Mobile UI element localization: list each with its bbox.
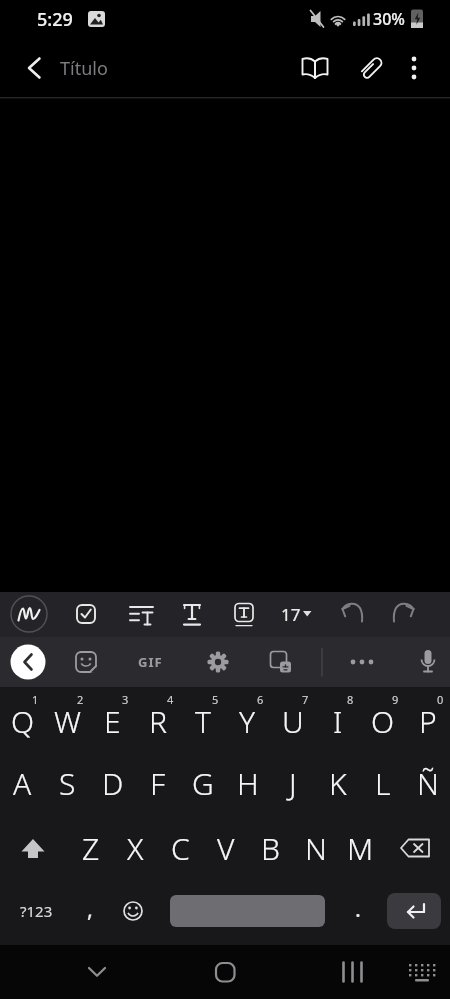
button[interactable] xyxy=(350,48,394,88)
button[interactable] xyxy=(110,886,156,936)
button[interactable] xyxy=(293,48,337,88)
button[interactable] xyxy=(201,950,249,994)
button[interactable] xyxy=(7,594,51,636)
button[interactable] xyxy=(64,594,108,636)
button[interactable] xyxy=(387,893,441,929)
button[interactable] xyxy=(10,818,60,878)
button[interactable]: K xyxy=(315,752,360,814)
staticText: 4 xyxy=(167,692,174,707)
staticText: 3 xyxy=(122,692,129,707)
button[interactable]: P xyxy=(405,691,450,751)
staticText: 5 xyxy=(212,692,219,707)
button[interactable]: R xyxy=(135,691,180,751)
staticText: Ñ xyxy=(417,763,439,804)
staticText: B xyxy=(261,828,280,869)
button[interactable] xyxy=(340,640,384,684)
button[interactable]: B xyxy=(248,817,293,879)
staticText: T xyxy=(195,701,211,742)
button[interactable]: . xyxy=(338,883,378,933)
button[interactable] xyxy=(330,594,374,636)
button[interactable]: Q xyxy=(0,691,45,751)
staticText: 8 xyxy=(347,692,354,707)
button[interactable] xyxy=(73,950,121,994)
button[interactable]: ?123 xyxy=(6,886,66,936)
staticText: X xyxy=(127,828,144,869)
button[interactable]: S xyxy=(45,752,90,814)
button[interactable]: J xyxy=(270,752,315,814)
staticText: Título xyxy=(60,56,108,81)
button[interactable]: U xyxy=(270,691,315,751)
staticText: Q xyxy=(11,701,35,742)
staticText: Y xyxy=(239,701,256,742)
button[interactable]: V xyxy=(203,817,248,879)
staticText: V xyxy=(217,828,235,869)
staticText: 5:29 xyxy=(37,7,73,32)
button[interactable] xyxy=(259,640,303,684)
staticText: G xyxy=(192,763,214,804)
staticText: E xyxy=(104,701,121,742)
button[interactable] xyxy=(406,640,450,684)
staticText: 2 xyxy=(77,692,84,707)
staticText: C xyxy=(171,828,190,869)
button[interactable] xyxy=(128,640,172,684)
staticText: GIF xyxy=(138,653,163,671)
staticText: 6 xyxy=(257,692,264,707)
staticText: D xyxy=(102,763,124,804)
button[interactable] xyxy=(8,642,48,682)
button[interactable]: M xyxy=(338,817,383,879)
staticText: M xyxy=(347,828,374,869)
button[interactable] xyxy=(64,640,108,684)
button[interactable]: Ñ xyxy=(405,752,450,814)
button[interactable]: D xyxy=(90,752,135,814)
button[interactable]: T xyxy=(180,691,225,751)
button[interactable]: C xyxy=(158,817,203,879)
staticText: Z xyxy=(82,828,100,869)
button[interactable] xyxy=(170,895,325,927)
staticText: N xyxy=(305,828,327,869)
staticText: 30% xyxy=(373,8,405,30)
staticText: U xyxy=(282,701,304,742)
button[interactable]: F xyxy=(135,752,180,814)
button[interactable]: X xyxy=(113,817,158,879)
staticText: . xyxy=(355,893,361,923)
button[interactable] xyxy=(396,48,436,88)
staticText: H xyxy=(237,763,259,804)
staticText: W xyxy=(54,701,81,742)
button[interactable]: Z xyxy=(68,817,113,879)
button[interactable] xyxy=(222,594,266,636)
button[interactable] xyxy=(398,950,446,994)
button[interactable]: G xyxy=(180,752,225,814)
button[interactable]: A xyxy=(0,752,45,814)
button[interactable]: E xyxy=(90,691,135,751)
staticText: 0 xyxy=(437,692,444,707)
button[interactable] xyxy=(386,594,430,636)
staticText: K xyxy=(329,763,347,804)
button[interactable]: H xyxy=(225,752,270,814)
button[interactable]: W xyxy=(45,691,90,751)
button[interactable]: O xyxy=(360,691,405,751)
staticText: L xyxy=(375,763,391,804)
staticText: R xyxy=(149,701,167,742)
staticText: P xyxy=(419,701,437,742)
staticText: 17 xyxy=(281,603,301,626)
staticText: 7 xyxy=(302,692,309,707)
staticText: F xyxy=(150,763,166,804)
button[interactable] xyxy=(196,640,240,684)
button[interactable] xyxy=(10,48,58,88)
staticText: , xyxy=(87,893,93,923)
button[interactable] xyxy=(170,594,214,636)
button[interactable]: , xyxy=(70,883,110,933)
button[interactable] xyxy=(119,594,163,636)
button[interactable]: I xyxy=(315,691,360,751)
button[interactable]: Y xyxy=(225,691,270,751)
button[interactable] xyxy=(328,950,376,994)
button[interactable] xyxy=(392,818,442,878)
button[interactable] xyxy=(272,594,316,636)
staticText: S xyxy=(59,763,76,804)
button[interactable]: L xyxy=(360,752,405,814)
staticText: O xyxy=(371,701,395,742)
staticText: ?123 xyxy=(20,901,53,921)
button[interactable]: N xyxy=(293,817,338,879)
staticText: 9 xyxy=(392,692,399,707)
staticText: J xyxy=(289,763,297,804)
